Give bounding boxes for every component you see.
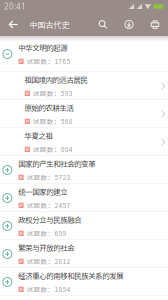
staticText: 试题数：5723	[26, 172, 70, 182]
staticText: 繁荣与开放的社会	[18, 242, 74, 253]
button[interactable]: 华夏之祖	[0, 128, 168, 156]
button[interactable]: Back	[1, 13, 26, 36]
staticText: 试题数：1765	[26, 56, 70, 66]
staticText: 祖国境内的远古居民	[24, 74, 87, 85]
button[interactable]: 统一国家的建立	[0, 184, 168, 212]
button[interactable]: Print	[142, 13, 168, 36]
staticText: 试题数：699	[26, 228, 66, 238]
staticText: 统一国家的建立	[18, 186, 67, 197]
staticText: 经济重心的南移和民族关系的发展	[18, 270, 123, 281]
staticText: 20:41	[4, 1, 26, 12]
staticText: 试题数：604	[33, 144, 73, 154]
button[interactable]: 国家的产生和社会的变革	[0, 156, 168, 184]
staticText: 原始的农耕生活	[24, 102, 73, 113]
staticText: 华夏之祖	[24, 130, 52, 141]
staticText: 试题数：593	[33, 88, 73, 98]
button[interactable]: 经济重心的南移和民族关系的发展	[0, 268, 168, 296]
button[interactable]: 政权分立与民族融合	[0, 212, 168, 240]
staticText: 试题数：1854	[26, 284, 70, 294]
button[interactable]: Download	[116, 13, 142, 36]
staticText: 试题数：568	[33, 116, 73, 126]
button[interactable]: 原始的农耕生活	[0, 100, 168, 128]
button[interactable]: 繁荣与开放的社会	[0, 240, 168, 268]
button[interactable]: Search	[90, 13, 116, 36]
staticText: 中华文明的起源	[18, 42, 67, 53]
staticText: 国家的产生和社会的变革	[18, 158, 95, 169]
button[interactable]: 中华文明的起源	[0, 36, 168, 72]
staticText: 中国古代史	[29, 19, 69, 30]
staticText: 政权分立与民族融合	[18, 214, 81, 225]
staticText: 试题数：2457	[26, 200, 70, 210]
staticText: 试题数：2812	[26, 256, 70, 266]
button[interactable]: 祖国境内的远古居民	[0, 72, 168, 100]
